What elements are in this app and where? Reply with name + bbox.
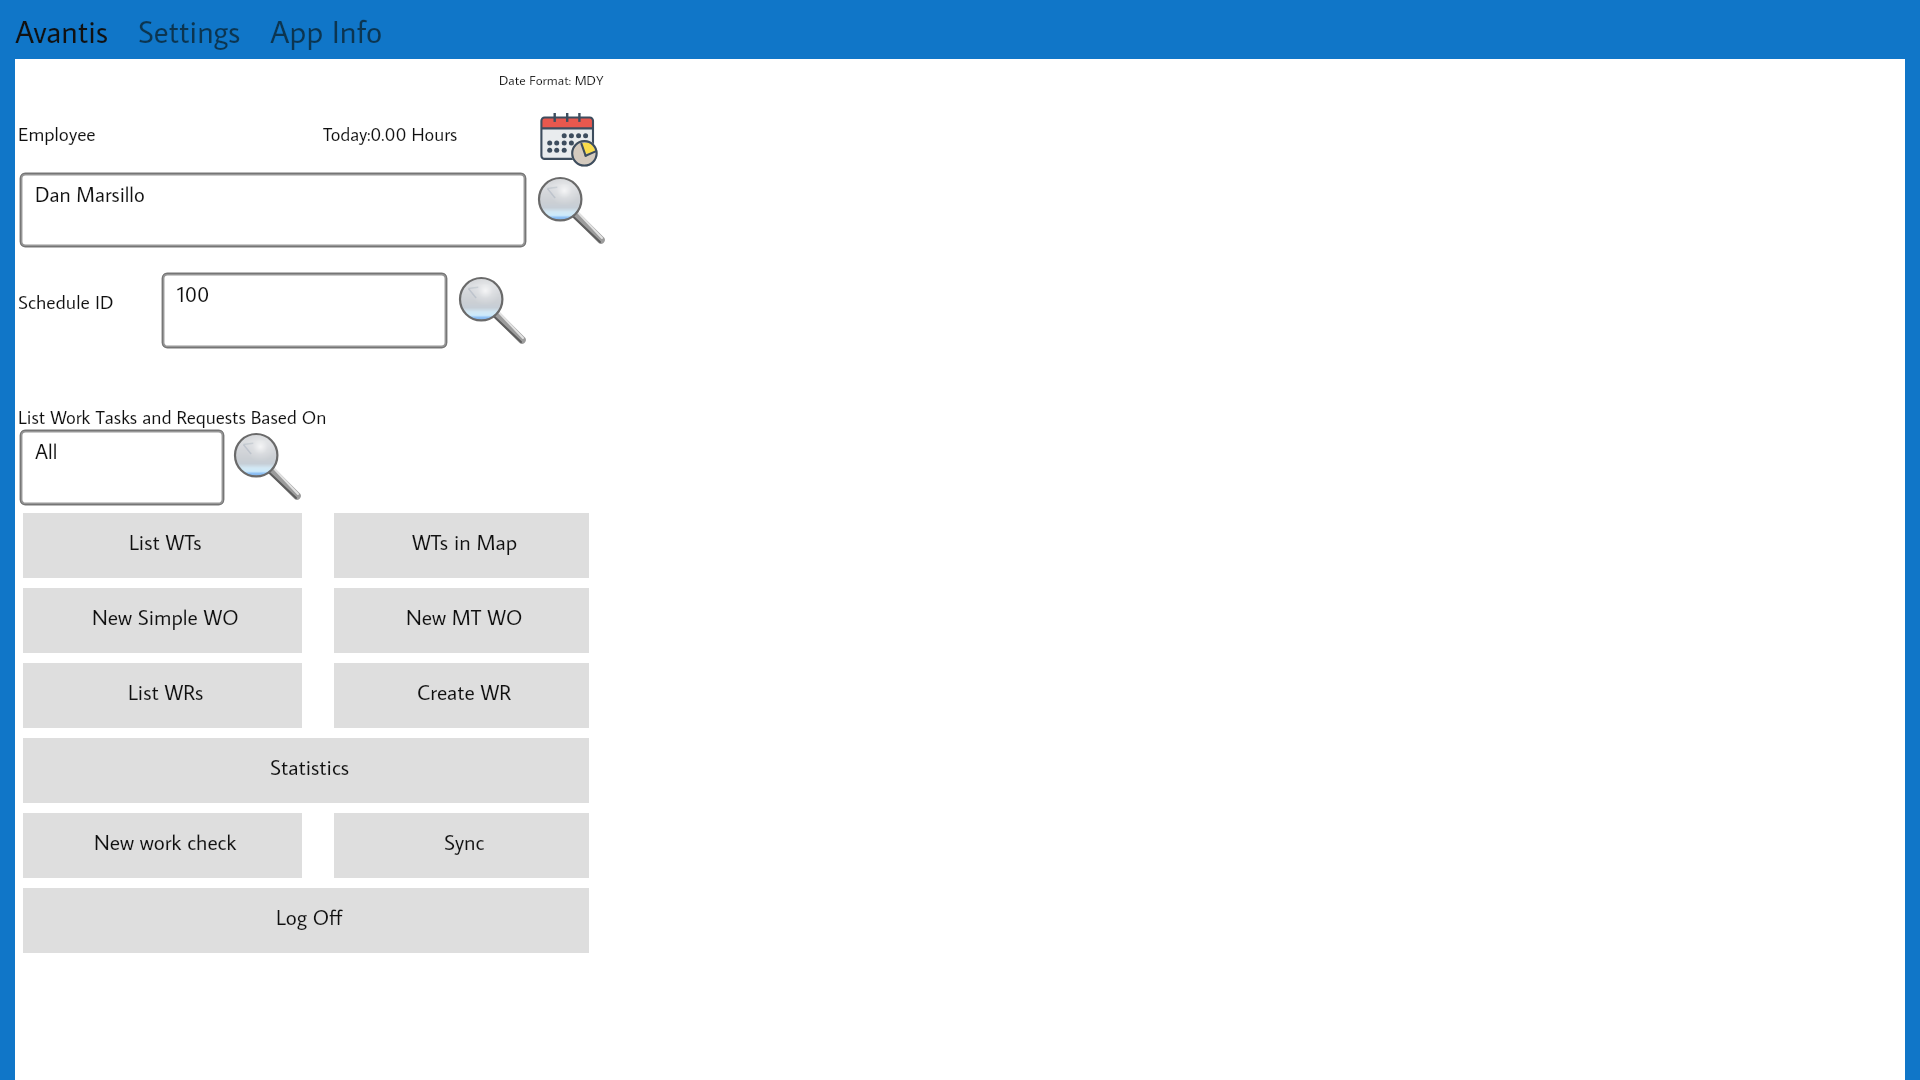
- button[interactable]: WTs in Map: [334, 513, 589, 578]
- staticText: List Work Tasks and Requests Based On: [18, 404, 327, 429]
- staticText: Log Off: [276, 903, 343, 931]
- button[interactable]: New work check: [23, 813, 302, 878]
- button[interactable]: Dan Marsillo: [20, 173, 526, 247]
- staticText: Statistics: [270, 753, 349, 781]
- staticText: Schedule ID: [18, 289, 114, 314]
- staticText: New Simple WO: [92, 603, 239, 631]
- staticText: List WRs: [128, 678, 204, 706]
- staticText: Dan Marsillo: [35, 180, 145, 207]
- button[interactable]: App Info: [270, 11, 383, 52]
- staticText: New MT WO: [406, 603, 523, 631]
- button[interactable]: List WRs: [23, 663, 302, 728]
- staticText: Today:0.00 Hours: [323, 122, 458, 146]
- button[interactable]: Timesheet: [535, 110, 595, 162]
- button[interactable]: 100: [162, 273, 447, 348]
- staticText: Employee: [18, 121, 96, 146]
- staticText: All: [35, 437, 58, 464]
- staticText: Create WR: [417, 678, 512, 706]
- button[interactable]: Search: [233, 433, 301, 501]
- staticText: Date Format: MDY: [499, 71, 604, 88]
- staticText: New work check: [94, 828, 237, 856]
- button[interactable]: New MT WO: [334, 588, 589, 653]
- staticText: 100: [177, 280, 210, 307]
- button[interactable]: Log Off: [23, 888, 589, 953]
- staticText: WTs in Map: [412, 528, 518, 556]
- button[interactable]: New Simple WO: [23, 588, 302, 653]
- button[interactable]: All: [20, 430, 224, 505]
- button[interactable]: Avantis: [15, 11, 108, 51]
- button[interactable]: Search: [458, 277, 526, 345]
- staticText: Sync: [444, 828, 485, 856]
- button[interactable]: Statistics: [23, 738, 589, 803]
- button[interactable]: List WTs: [23, 513, 302, 578]
- staticText: List WTs: [129, 528, 202, 556]
- button[interactable]: Sync: [334, 813, 589, 878]
- button[interactable]: Search: [537, 177, 605, 245]
- button[interactable]: Settings: [138, 11, 241, 51]
- button[interactable]: Create WR: [334, 663, 589, 728]
